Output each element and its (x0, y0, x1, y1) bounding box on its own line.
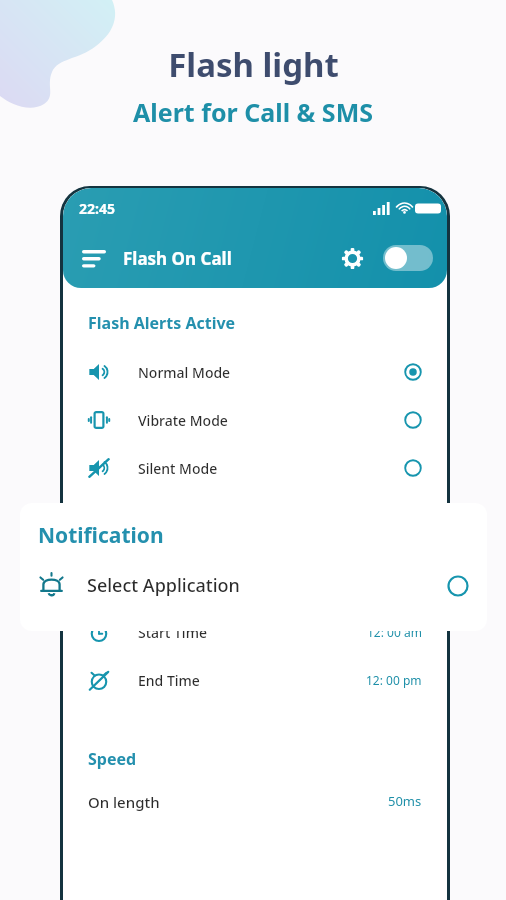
staticText: Vibrate Mode (138, 411, 228, 430)
button[interactable]: Timer (70, 558, 440, 712)
button[interactable]: Menu (77, 241, 111, 275)
staticText: Flash light (168, 42, 339, 87)
staticText: Alert for Call & SMS (133, 95, 373, 129)
staticText: Silent Mode (138, 459, 218, 478)
button[interactable]: End Time (88, 656, 422, 704)
staticText: Notification (38, 521, 164, 550)
staticText: Flash Alerts Active (88, 312, 236, 334)
button[interactable]: Normal Mode (88, 348, 422, 396)
staticText: Timer (88, 573, 135, 595)
button[interactable]: Speed (70, 728, 440, 852)
staticText: 22:45 (79, 199, 115, 218)
staticText: 12: 00 pm (366, 672, 422, 688)
button[interactable]: Start Time (88, 608, 422, 656)
button[interactable]: Vibrate Mode (88, 396, 422, 444)
staticText: End Time (138, 671, 200, 690)
staticText: 12: 00 am (367, 624, 422, 640)
staticText: Flash On Call (123, 247, 232, 270)
staticText: Normal Mode (138, 363, 231, 382)
button[interactable]: Flash Alerts Active (70, 298, 440, 526)
button[interactable]: Notification (20, 503, 487, 631)
staticText: 50ms (388, 792, 422, 810)
button[interactable]: Settings (335, 241, 369, 275)
staticText: Start Time (138, 623, 207, 642)
staticText: Select Application (87, 573, 240, 598)
staticText: Speed (88, 748, 137, 770)
button[interactable]: Silent Mode (88, 444, 422, 492)
button[interactable]: Flash toggle (383, 245, 433, 271)
staticText: On length (88, 792, 160, 812)
